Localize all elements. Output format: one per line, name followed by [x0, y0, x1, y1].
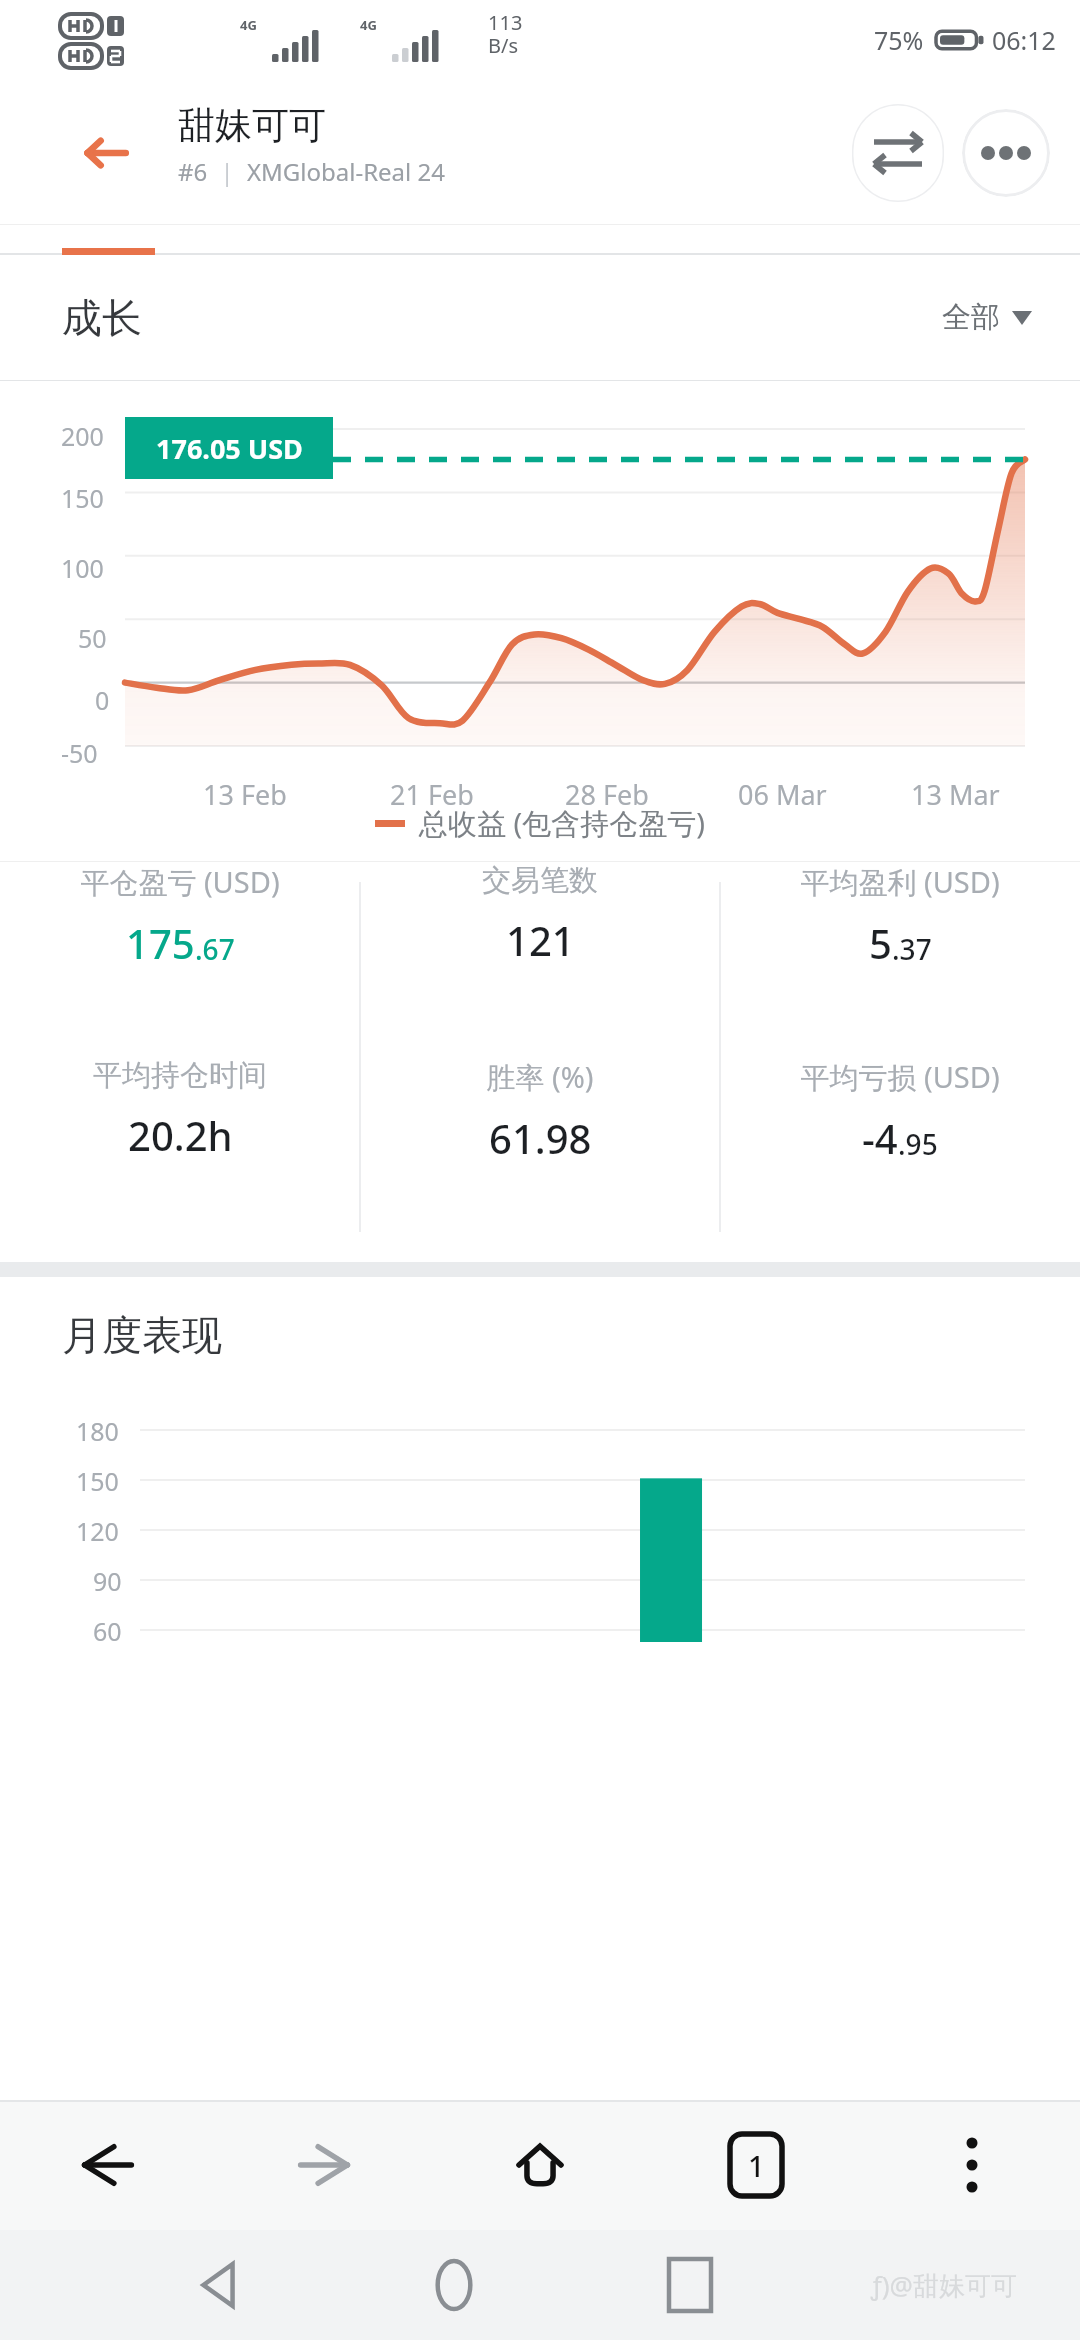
button[interactable]: Tabs [648, 2100, 864, 2230]
staticText: 175 [126, 916, 195, 970]
staticText: -4 [862, 1111, 898, 1165]
staticText: 胜率 (%) [486, 1057, 594, 1097]
staticText: 120 [76, 1514, 119, 1548]
staticText: 成长 [62, 293, 142, 343]
staticText: 75% [874, 23, 924, 57]
staticText: 4G [240, 16, 257, 34]
button[interactable]: More options [962, 109, 1050, 197]
staticText: 60 [93, 1614, 122, 1648]
button[interactable]: Back [62, 109, 150, 197]
staticText: 121 [506, 913, 575, 967]
staticText: 交易笔数 [482, 862, 598, 899]
button[interactable]: Forward [216, 2100, 432, 2230]
staticText: B/s [488, 32, 519, 59]
staticText: #6 [178, 155, 208, 188]
staticText: 06:12 [992, 23, 1056, 57]
staticText: 176.05 USD [156, 430, 303, 467]
button[interactable]: 平仓盈亏 (USD) [0, 862, 360, 970]
staticText: -50 [61, 736, 98, 770]
staticText: | [208, 155, 247, 188]
staticText: 全部 [942, 299, 1000, 336]
staticText: .95 [898, 1125, 938, 1163]
staticText: 150 [61, 481, 104, 515]
staticText: 1 [748, 2146, 765, 2185]
staticText: 50 [78, 621, 107, 655]
staticText: 21 Feb [390, 776, 474, 813]
button[interactable]: Menu [864, 2100, 1080, 2230]
staticText: 平均持仓时间 [93, 1057, 267, 1094]
staticText: 4G [360, 16, 377, 34]
staticText: 平仓盈亏 (USD) [80, 862, 280, 902]
staticText: 113 [488, 9, 523, 36]
staticText: 06 Mar [738, 776, 827, 813]
staticText: 180 [76, 1414, 119, 1448]
button[interactable]: Back [0, 2100, 216, 2230]
staticText: 13 Mar [911, 776, 1000, 813]
staticText: 平均盈利 (USD) [800, 862, 1000, 902]
staticText: 5 [869, 916, 892, 970]
button[interactable]: 胜率 (%) [360, 1057, 720, 1165]
staticText: 28 Feb [565, 776, 649, 813]
staticText: 平均亏损 (USD) [800, 1057, 1000, 1097]
button[interactable]: Home [336, 2230, 572, 2340]
staticText: 100 [61, 551, 104, 585]
staticText: XMGlobal-Real 24 [247, 155, 445, 188]
staticText: 150 [76, 1464, 119, 1498]
staticText: 61.98 [489, 1111, 592, 1165]
staticText: 200 [61, 419, 104, 453]
button[interactable]: Home [432, 2100, 648, 2230]
button[interactable]: Back [100, 2230, 336, 2340]
button[interactable]: 全部 [942, 299, 1032, 336]
staticText: 总收益 (包含持仓盈亏) [419, 803, 705, 843]
button[interactable]: 平均持仓时间 [0, 1057, 360, 1162]
button[interactable]: 平均亏损 (USD) [720, 1057, 1080, 1165]
button[interactable]: 平均盈利 (USD) [720, 862, 1080, 970]
staticText: .67 [195, 930, 235, 968]
staticText: .37 [892, 930, 932, 968]
button[interactable]: Recents [572, 2230, 808, 2340]
staticText: 90 [93, 1564, 122, 1598]
button[interactable]: 交易笔数 [360, 862, 720, 967]
staticText: ƒ)@甜妹可可 [871, 2267, 1017, 2303]
staticText: 0 [95, 683, 110, 717]
staticText: 13 Feb [203, 776, 287, 813]
button[interactable]: Compare [852, 104, 944, 202]
staticText: 月度表现 [62, 1310, 222, 1360]
staticText: 甜妹可可 [178, 102, 326, 149]
staticText: 20.2h [128, 1108, 233, 1162]
